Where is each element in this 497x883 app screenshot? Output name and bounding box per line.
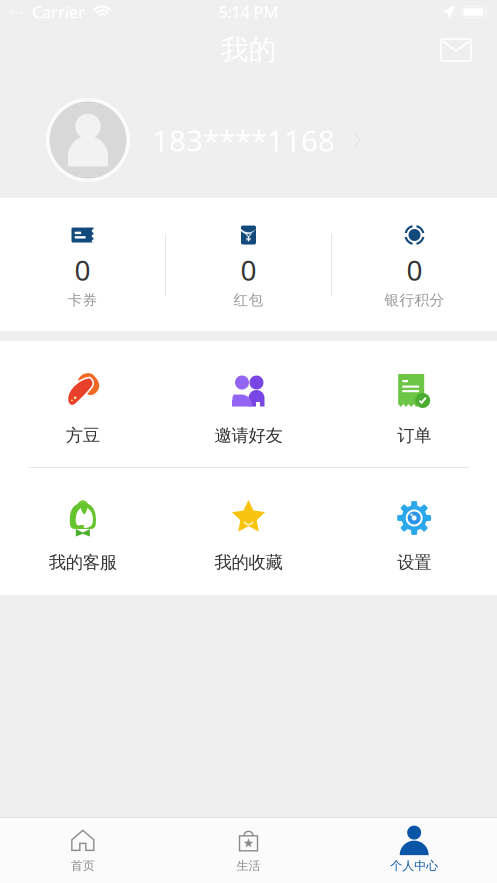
staticText: 0 bbox=[406, 251, 422, 289]
staticText: 银行积分 bbox=[384, 291, 444, 309]
button[interactable]: 邀请好友 bbox=[166, 341, 331, 467]
staticText: 我的 bbox=[220, 33, 276, 67]
button[interactable]: 0 bbox=[0, 198, 165, 331]
button[interactable]: 我的收藏 bbox=[166, 468, 331, 595]
staticText: 设置 bbox=[397, 552, 431, 573]
button[interactable]: 首页 bbox=[0, 818, 166, 883]
staticText: 我的客服 bbox=[49, 552, 117, 573]
staticText: 0 bbox=[74, 251, 90, 289]
staticText: 邀请好友 bbox=[214, 425, 282, 446]
staticText: 订单 bbox=[397, 425, 431, 446]
staticText: 生活 bbox=[236, 858, 260, 873]
button[interactable]: 设置 bbox=[331, 468, 497, 595]
button[interactable]: 0 bbox=[332, 198, 497, 331]
button[interactable]: 个人中心 bbox=[331, 818, 497, 883]
staticText: 我的收藏 bbox=[214, 552, 282, 573]
button[interactable]: 订单 bbox=[331, 341, 497, 467]
button[interactable]: 我的客服 bbox=[0, 468, 166, 595]
staticText: 个人中心 bbox=[390, 858, 438, 873]
staticText: 首页 bbox=[71, 858, 95, 873]
staticText: 5:14 PM bbox=[218, 1, 278, 23]
staticText: 183****1168 bbox=[152, 120, 335, 159]
staticText: 0 bbox=[240, 251, 256, 289]
staticText: 卡券 bbox=[67, 291, 97, 309]
button[interactable]: 消息 bbox=[432, 28, 480, 72]
button[interactable]: 0 bbox=[166, 198, 331, 331]
staticText: 方豆 bbox=[66, 425, 100, 446]
button[interactable]: 183****1168 bbox=[152, 118, 362, 162]
staticText: 红包 bbox=[233, 291, 263, 309]
button[interactable]: 生活 bbox=[166, 818, 331, 883]
button[interactable]: 方豆 bbox=[0, 341, 166, 467]
staticText: Carrier bbox=[24, 1, 85, 23]
